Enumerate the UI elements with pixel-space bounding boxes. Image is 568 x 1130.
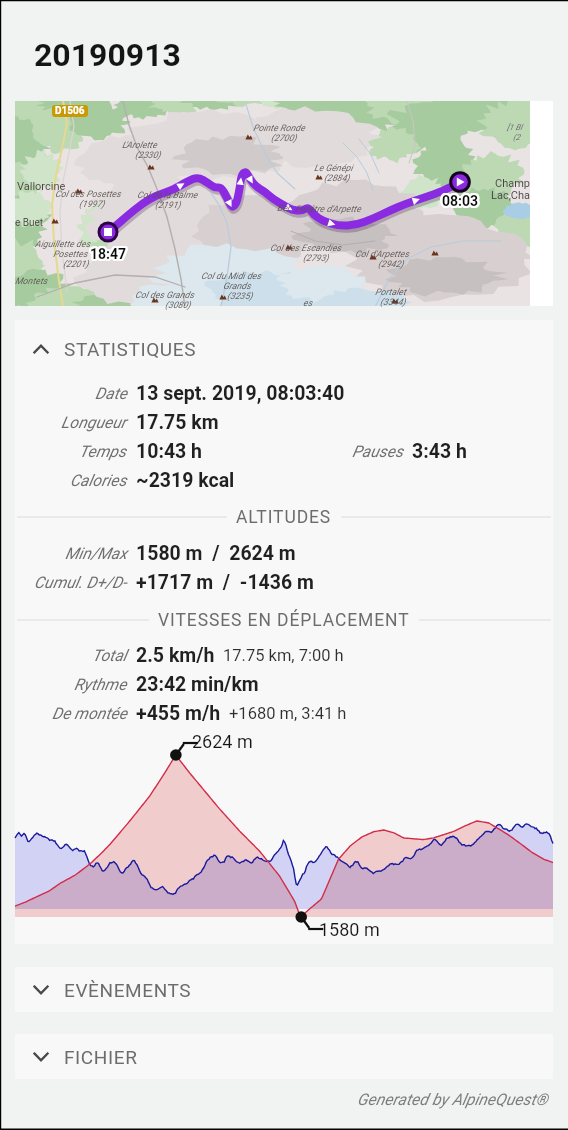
- staticText: Min/Max: [65, 544, 127, 563]
- staticText: Champ: [495, 177, 531, 190]
- staticText: D1506: [55, 105, 85, 117]
- staticText: VITESSES EN DÉPLACEMENT: [158, 610, 410, 631]
- staticText: 18:47: [91, 247, 128, 263]
- staticText: 08:03: [441, 191, 478, 207]
- staticText: +1680 m, 3:41 h: [229, 704, 347, 723]
- staticText: (3344): [380, 297, 406, 308]
- staticText: 08:03: [442, 194, 479, 210]
- staticText: STATISTIQUES: [64, 338, 197, 360]
- staticText: +455 m/h: [136, 702, 221, 725]
- staticText: 08:03: [443, 191, 480, 207]
- staticText: 1580 m: [319, 919, 380, 940]
- staticText: 08:03: [441, 194, 478, 210]
- staticText: Montets: [15, 276, 48, 287]
- staticText: 18:47: [92, 245, 129, 261]
- staticText: 08:03: [442, 193, 479, 209]
- staticText: 08:03: [442, 192, 479, 208]
- staticText: 08:03: [444, 194, 481, 210]
- staticText: 23:42 min/km: [136, 673, 259, 696]
- staticText: +1717 m / -1436 m: [136, 571, 314, 594]
- staticText: 08:03: [443, 193, 480, 209]
- staticText: 08:03: [443, 195, 480, 211]
- staticText: 17.75 km, 7:00 h: [223, 646, 344, 665]
- staticText: 18:47: [89, 244, 126, 260]
- staticText: Temps: [79, 442, 127, 461]
- staticText: 18:47: [90, 247, 127, 263]
- staticText: Col des Escandies: [270, 243, 342, 254]
- staticText: 20190913: [34, 36, 181, 74]
- staticText: 18:47: [88, 245, 125, 261]
- staticText: De montée: [52, 704, 127, 723]
- staticText: e Buet: [15, 217, 44, 229]
- staticText: 18:47: [88, 246, 125, 262]
- staticText: 17.75 km: [136, 411, 219, 434]
- staticText: L'Arolette: [122, 140, 157, 151]
- staticText: 08:03: [442, 191, 479, 207]
- staticText: 18:47: [89, 248, 126, 264]
- staticText: 1580 m / 2624 m: [136, 542, 296, 565]
- staticText: Col du Midi des: [201, 271, 261, 282]
- staticText: 18:47: [89, 247, 126, 263]
- staticText: 10:43 h: [136, 440, 203, 463]
- staticText: Calories: [70, 471, 127, 490]
- button[interactable]: EVÈNEMENTS: [15, 967, 553, 1012]
- staticText: 18:47: [91, 246, 128, 262]
- staticText: 08:03: [444, 192, 481, 208]
- staticText: Generated by AlpineQuest®: [357, 1090, 548, 1109]
- staticText: Grands: [223, 281, 251, 292]
- staticText: (3080): [165, 300, 191, 311]
- staticText: 08:03: [440, 193, 477, 209]
- staticText: Vallorcine: [17, 180, 66, 193]
- staticText: ~2319 kcal: [136, 469, 235, 492]
- staticText: (2942): [378, 259, 404, 270]
- button[interactable]: FICHIER: [15, 1034, 553, 1079]
- staticText: Portalet: [375, 287, 406, 298]
- staticText: Cumul. D+/D-: [34, 573, 127, 592]
- staticText: 08:03: [442, 195, 479, 211]
- staticText: 08:03: [441, 192, 478, 208]
- staticText: (2793): [303, 253, 329, 264]
- staticText: (2191): [155, 200, 181, 211]
- staticText: 3:43 h: [412, 440, 467, 463]
- staticText: 18:47: [90, 245, 127, 261]
- staticText: 08:03: [441, 195, 478, 211]
- staticText: 18:47: [90, 244, 127, 260]
- staticText: (2330): [135, 150, 161, 161]
- button[interactable]: STATISTIQUES: [15, 334, 553, 364]
- staticText: 18:47: [92, 247, 129, 263]
- staticText: es: [303, 298, 313, 309]
- staticText: [1 Bl: [507, 123, 523, 132]
- staticText: (1997): [79, 199, 105, 210]
- staticText: 08:03: [443, 194, 480, 210]
- staticText: Le Génépi: [314, 163, 353, 174]
- staticText: 08:03: [440, 194, 477, 210]
- staticText: 18:47: [90, 248, 127, 264]
- staticText: Col des Grands: [135, 290, 194, 301]
- staticText: 18:47: [91, 244, 128, 260]
- staticText: Pointe Ronde: [253, 123, 305, 134]
- staticText: 08:03: [443, 192, 480, 208]
- staticText: (2: [513, 133, 521, 142]
- staticText: Rythme: [74, 675, 127, 694]
- staticText: Longueur: [61, 413, 127, 432]
- staticText: 2624 m: [192, 731, 253, 752]
- staticText: (2201): [63, 259, 89, 270]
- staticText: 18:47: [89, 246, 126, 262]
- staticText: 18:47: [88, 247, 125, 263]
- staticText: 08:03: [444, 193, 481, 209]
- staticText: FICHIER: [64, 1046, 138, 1068]
- staticText: Ber: [277, 203, 291, 214]
- staticText: Lac,Cha: [491, 189, 531, 202]
- staticText: ALTITUDES: [236, 507, 332, 528]
- staticText: Col d'Arpettes: [355, 249, 409, 260]
- staticText: 08:03: [440, 192, 477, 208]
- staticText: 18:47: [91, 248, 128, 264]
- staticText: EVÈNEMENTS: [64, 979, 192, 1001]
- staticText: (2884): [324, 173, 350, 184]
- staticText: Posettes: [53, 249, 88, 260]
- staticText: (2700): [271, 133, 297, 144]
- staticText: (3235): [227, 291, 253, 302]
- staticText: 18:47: [89, 245, 126, 261]
- staticText: Total: [92, 646, 127, 665]
- staticText: 18:47: [90, 246, 127, 262]
